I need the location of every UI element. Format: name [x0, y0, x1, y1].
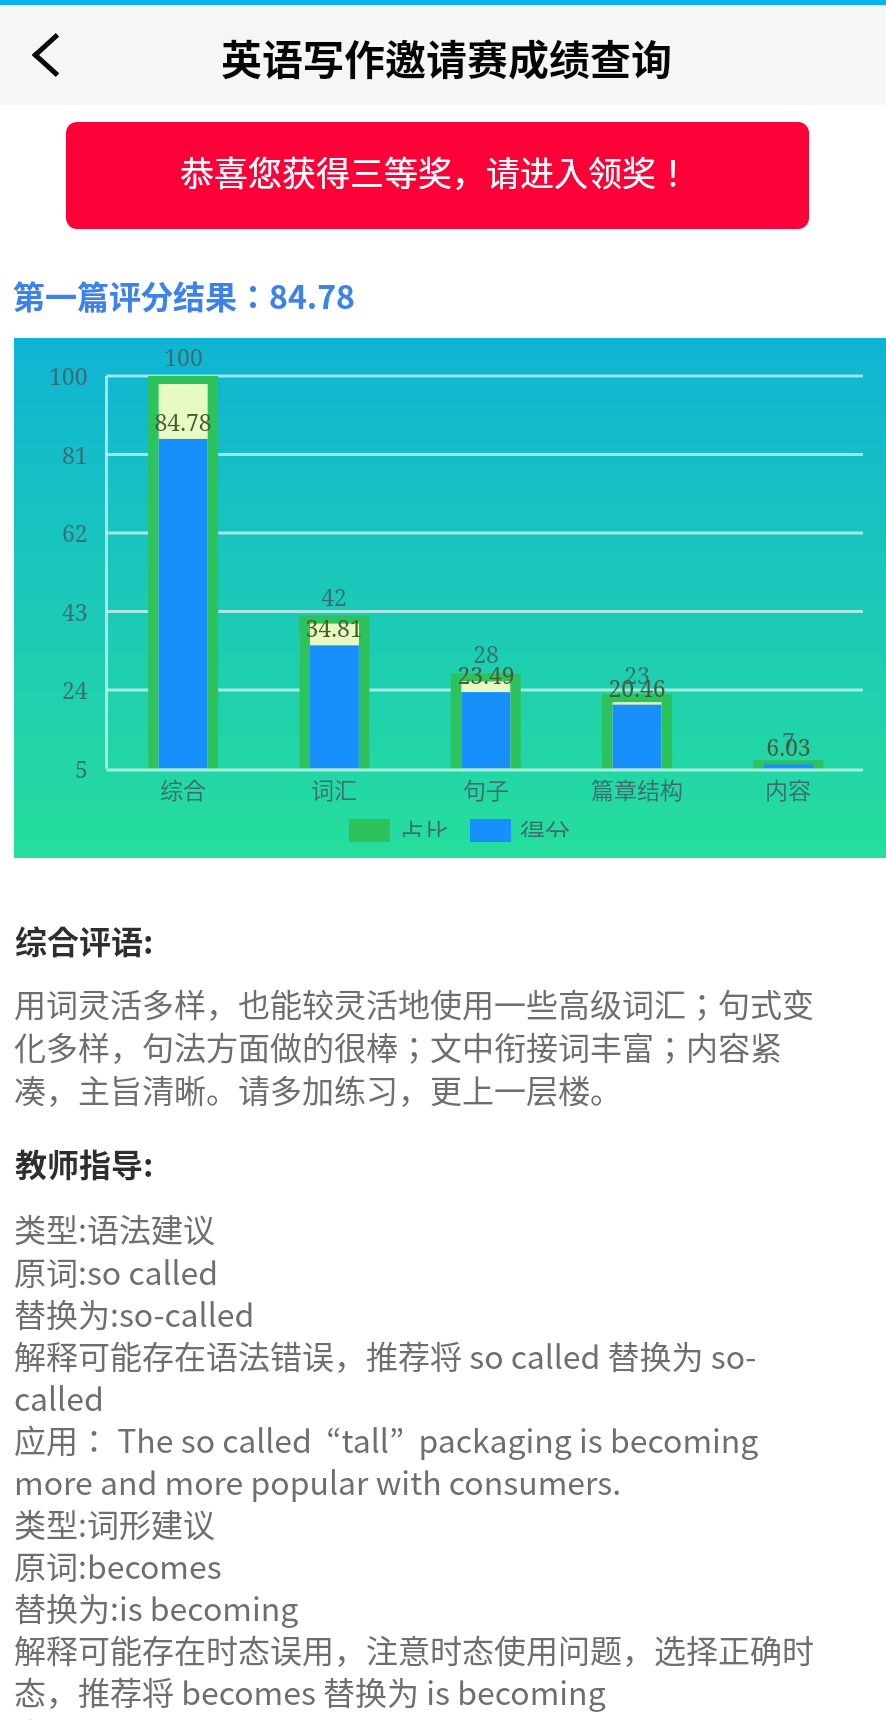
staticText: 类型:语法建议 原词:so called 替换为:so-called 解释可能存… [14, 1205, 832, 1720]
staticText: 42 [321, 581, 347, 609]
staticText: 24 [62, 674, 88, 704]
staticText: 篇章结构 [591, 772, 683, 802]
staticText: 词汇 [311, 772, 357, 802]
staticText: 第一篇评分结果：84.78 [13, 272, 355, 318]
staticText: 23.49 [457, 659, 515, 687]
staticText: 43 [62, 596, 88, 626]
staticText: 34.81 [305, 612, 363, 640]
staticText: 综合 [160, 772, 206, 802]
staticText: 综合评语: [15, 917, 154, 963]
staticText: 100 [164, 341, 203, 369]
staticText: 用词灵活多样，也能较灵活地使用一些高级词汇；句式变化多样，句法方面做的很棒；文中… [14, 980, 832, 1113]
staticText: 62 [62, 517, 88, 547]
staticText: 81 [62, 439, 88, 469]
staticText: 内容 [765, 772, 811, 802]
staticText: 20.46 [608, 672, 666, 700]
staticText: 教师指导: [15, 1140, 154, 1186]
button[interactable]: 恭喜您获得三等奖，请进入领奖！ [66, 122, 809, 229]
staticText: 84.78 [154, 406, 212, 434]
staticText: 23 [624, 659, 650, 687]
staticText: 得分 [520, 813, 571, 837]
staticText: 28 [473, 638, 499, 666]
button[interactable]: Back [6, 15, 86, 95]
staticText: 句子 [463, 772, 509, 802]
staticText: 恭喜您获得三等奖，请进入领奖！ [180, 147, 690, 196]
staticText: 7 [782, 725, 795, 753]
staticText: 100 [49, 360, 88, 390]
staticText: 占比 [399, 813, 450, 837]
staticText: 英语写作邀请赛成绩查询 [221, 27, 672, 86]
staticText: 5 [75, 753, 88, 783]
staticText: 6.03 [766, 731, 811, 759]
